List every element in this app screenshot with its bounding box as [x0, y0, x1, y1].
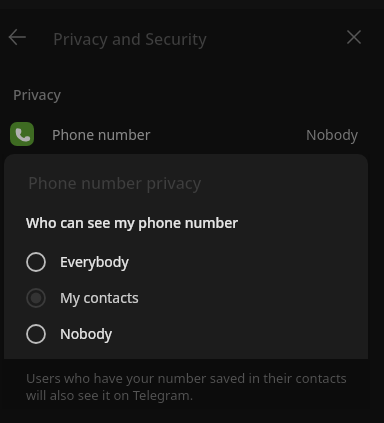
- staticText: My contacts: [60, 288, 139, 307]
- staticText: Everybody: [60, 252, 129, 271]
- staticText: Phone number: [52, 125, 151, 144]
- staticText: Phone number privacy: [28, 172, 202, 194]
- button[interactable]: Back: [0, 20, 33, 53]
- staticText: Nobody: [60, 324, 112, 343]
- button[interactable]: Phone number: [0, 110, 384, 158]
- button[interactable]: Everybody: [4, 244, 368, 280]
- staticText: Privacy: [13, 85, 61, 104]
- button[interactable]: Close: [337, 20, 371, 54]
- staticText: Privacy and Security: [53, 28, 207, 50]
- button[interactable]: Nobody: [4, 316, 368, 352]
- staticText: Who can see my phone number: [26, 213, 239, 232]
- staticText: Nobody: [306, 125, 358, 144]
- button[interactable]: My contacts: [4, 280, 368, 316]
- staticText: Users who have your number saved in thei…: [26, 369, 347, 404]
